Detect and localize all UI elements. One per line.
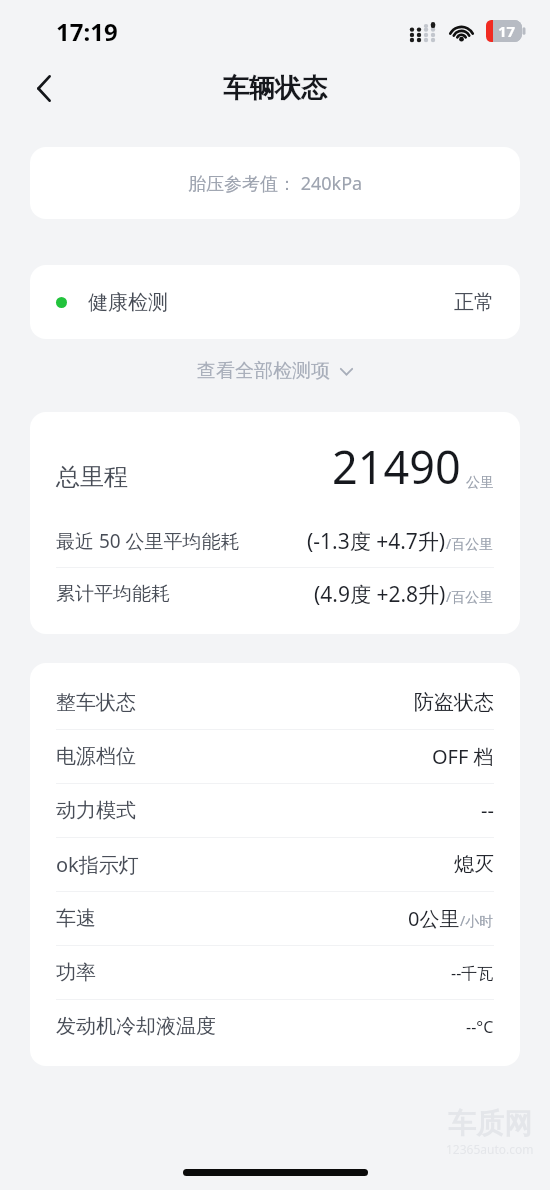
button[interactable]: 车速	[30, 892, 520, 945]
staticText: 防盗状态	[414, 690, 494, 715]
staticText: OFF 档	[432, 743, 494, 770]
staticText: 总里程	[56, 462, 128, 492]
staticText: 车速	[56, 906, 96, 931]
staticText: 车辆状态	[223, 72, 327, 105]
staticText: 最近 50 公里平均能耗	[56, 528, 240, 554]
staticText: /小时	[460, 911, 494, 930]
staticText: ok指示灯	[56, 851, 139, 878]
staticText: --	[481, 797, 494, 824]
staticText: 累计平均能耗	[56, 582, 170, 606]
button[interactable]: 动力模式	[30, 784, 520, 837]
staticText: --°C	[466, 1016, 494, 1038]
staticText: 公里	[466, 474, 494, 492]
button[interactable]: 查看全部检测项	[0, 353, 550, 389]
staticText: 胎压参考值： 240kPa	[188, 171, 363, 196]
staticText: 整车状态	[56, 690, 136, 715]
staticText: /百公里	[446, 587, 494, 606]
staticText: 查看全部检测项	[197, 359, 330, 383]
staticText: 21490	[332, 436, 461, 497]
staticText: 车质网	[448, 1106, 532, 1141]
staticText: 动力模式	[56, 798, 136, 823]
button[interactable]: 发动机冷却液温度	[30, 1000, 520, 1053]
staticText: 17	[498, 21, 516, 41]
staticText: 12365auto.com	[446, 1141, 534, 1157]
staticText: /百公里	[446, 534, 494, 553]
button[interactable]: 胎压参考值： 240kPa	[30, 147, 520, 219]
staticText: (-1.3度 +4.7升)	[307, 527, 446, 556]
staticText: 功率	[56, 960, 96, 985]
staticText: 发动机冷却液温度	[56, 1014, 216, 1039]
button[interactable]: Back	[21, 65, 67, 111]
staticText: 0公里	[408, 905, 460, 932]
staticText: 电源档位	[56, 744, 136, 769]
button[interactable]: 总里程	[30, 412, 520, 634]
staticText: 正常	[454, 290, 494, 315]
button[interactable]: ok指示灯	[30, 838, 520, 891]
staticText: 熄灭	[454, 852, 494, 877]
button[interactable]: 整车状态	[30, 676, 520, 729]
staticText: --千瓦	[451, 962, 494, 984]
button[interactable]: 健康检测	[30, 265, 520, 339]
staticText: 健康检测	[88, 290, 168, 315]
staticText: 17:19	[56, 15, 118, 48]
button[interactable]: 功率	[30, 946, 520, 999]
staticText: (4.9度 +2.8升)	[314, 580, 446, 609]
button[interactable]: 电源档位	[30, 730, 520, 783]
